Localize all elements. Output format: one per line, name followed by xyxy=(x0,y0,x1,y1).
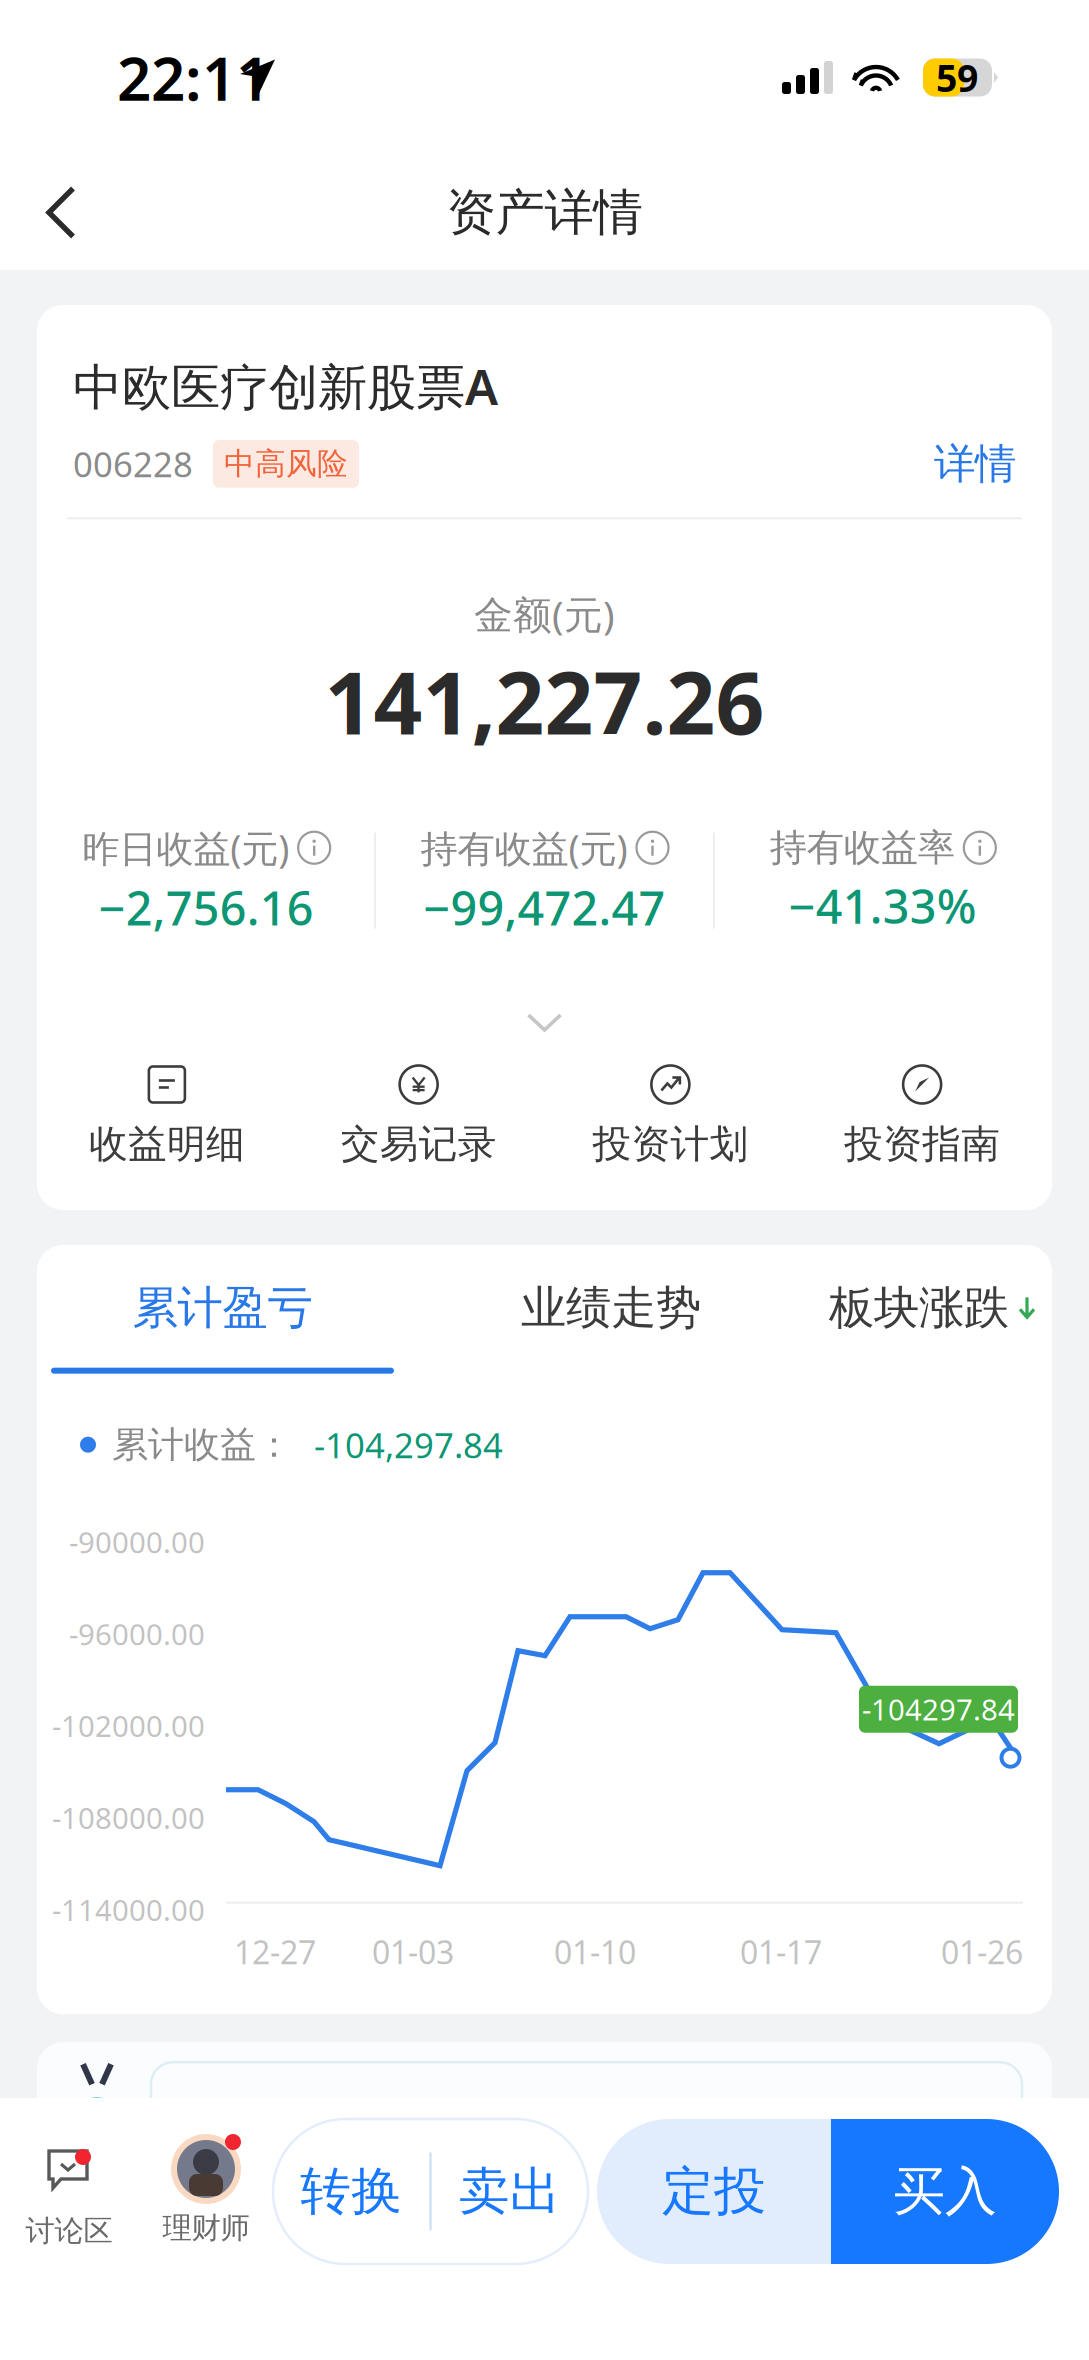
button[interactable]: 投资指南 xyxy=(796,1065,1048,1168)
staticText: 业绩走势 xyxy=(521,1280,701,1336)
staticText: 板块涨跌 xyxy=(829,1280,1009,1336)
staticText: 卖出 xyxy=(459,2160,561,2223)
staticText: 理财师 xyxy=(162,2210,249,2246)
staticText: 详情 xyxy=(934,438,1016,489)
staticText: 讨论区 xyxy=(25,2213,112,2249)
button[interactable]: Back xyxy=(0,157,140,267)
staticText: 交易记录 xyxy=(341,1120,497,1168)
staticText: −99,472.47 xyxy=(423,876,665,938)
staticText: −2,756.16 xyxy=(99,876,314,938)
staticText: 01-17 xyxy=(740,1931,822,1973)
staticText: 定投 xyxy=(662,2160,766,2223)
staticText: 006228 xyxy=(73,441,193,487)
staticText: 投资计划 xyxy=(592,1120,748,1168)
button[interactable]: 业绩走势 xyxy=(521,1280,701,1374)
button[interactable]: 定投 xyxy=(597,2119,831,2264)
button[interactable]: 累计盈亏 xyxy=(51,1280,394,1374)
staticText: −41.33% xyxy=(789,875,977,937)
staticText: -90000.00 xyxy=(69,1522,205,1561)
staticText: 持有收益(元) xyxy=(420,823,627,872)
button[interactable]: 卖出 xyxy=(431,2119,588,2264)
staticText: 累计盈亏 xyxy=(132,1280,312,1336)
button[interactable]: 买入 xyxy=(831,2119,1059,2264)
button[interactable]: 投资计划 xyxy=(544,1065,796,1168)
staticText: 收益明细 xyxy=(89,1120,245,1168)
staticText: 01-26 xyxy=(941,1931,1023,1973)
staticText: -104,297.84 xyxy=(314,1422,503,1468)
staticText: 22:11 xyxy=(117,38,270,117)
staticText: 金额(元) xyxy=(474,588,615,640)
staticText: 资产详情 xyxy=(446,182,642,243)
staticText: -108000.00 xyxy=(52,1798,205,1837)
staticText: 买入 xyxy=(893,2160,997,2223)
button[interactable]: 详情 xyxy=(934,434,1016,493)
button[interactable]: 板块涨跌 xyxy=(828,1280,1038,1374)
button[interactable]: 理财师 xyxy=(141,2119,271,2264)
staticText: -104297.84 xyxy=(862,1690,1015,1729)
button[interactable]: 交易记录 xyxy=(293,1065,545,1168)
staticText: 01-10 xyxy=(554,1931,636,1973)
staticText: 中高风险 xyxy=(224,445,348,483)
staticText: 昨日收益(元) xyxy=(82,823,289,872)
staticText: 投资指南 xyxy=(844,1120,1000,1168)
staticText: 12-27 xyxy=(234,1931,316,1973)
staticText: 累计收益： xyxy=(112,1423,292,1467)
staticText: 59 xyxy=(936,53,978,102)
staticText: 持有收益率 xyxy=(770,825,955,871)
staticText: -102000.00 xyxy=(52,1706,205,1745)
staticText: 中欧医疗创新股票A xyxy=(73,353,498,418)
button[interactable]: Expand xyxy=(37,1001,1052,1043)
staticText: -114000.00 xyxy=(52,1890,205,1929)
staticText: 141,227.26 xyxy=(324,645,764,758)
staticText: 转换 xyxy=(300,2160,402,2223)
staticText: 01-03 xyxy=(372,1931,454,1973)
button[interactable]: 讨论区 xyxy=(0,2119,141,2264)
button[interactable]: 收益明细 xyxy=(41,1065,293,1168)
button[interactable]: 转换 xyxy=(273,2119,429,2264)
staticText: -96000.00 xyxy=(69,1614,205,1653)
